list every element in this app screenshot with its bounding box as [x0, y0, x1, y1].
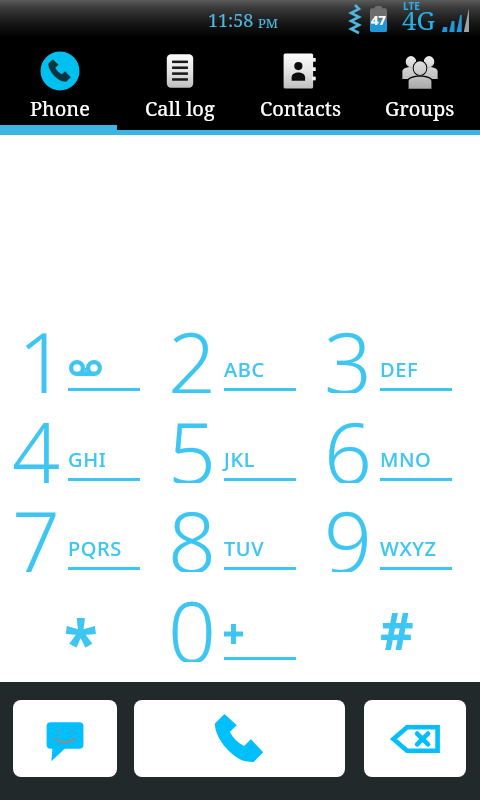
staticText: 5 — [168, 394, 216, 483]
button[interactable]: 7 — [12, 499, 168, 588]
button[interactable]: 8 — [168, 499, 324, 588]
button[interactable]: 4 — [12, 410, 168, 499]
staticText: 7 — [12, 483, 60, 572]
staticText: 47 — [371, 11, 386, 29]
staticText: 4 — [12, 394, 60, 483]
staticText: 11:58 — [208, 8, 254, 33]
button[interactable]: * — [12, 589, 168, 678]
staticText: ABC — [224, 356, 265, 383]
staticText: 2 — [168, 304, 216, 393]
staticText: TUV — [224, 535, 265, 562]
staticText: WXYZ — [380, 535, 437, 562]
button[interactable]: 3 — [324, 320, 480, 409]
staticText: JKL — [224, 446, 255, 473]
button[interactable]: 6 — [324, 410, 480, 499]
staticText: Phone — [30, 95, 90, 122]
button[interactable]: Delete — [364, 700, 466, 777]
button[interactable]: 1 — [12, 320, 168, 409]
staticText: 0 — [168, 573, 216, 662]
staticText: Groups — [385, 95, 455, 122]
staticText: 8 — [168, 483, 216, 572]
staticText: PM — [258, 14, 279, 32]
button[interactable]: # — [324, 589, 480, 678]
staticText: Contacts — [260, 95, 341, 122]
staticText: 6 — [324, 394, 372, 483]
staticText: MNO — [380, 446, 432, 473]
staticText: 1 — [18, 304, 66, 393]
button[interactable]: Call — [134, 700, 345, 777]
button[interactable]: 9 — [324, 499, 480, 588]
staticText: 3 — [324, 304, 372, 393]
staticText: * — [64, 600, 98, 684]
staticText: PQRS — [68, 535, 122, 562]
staticText: DEF — [380, 356, 419, 383]
staticText: 9 — [324, 483, 372, 572]
button[interactable]: Contacts — [240, 36, 360, 130]
button[interactable]: Groups — [360, 36, 480, 130]
button[interactable]: 2 — [168, 320, 324, 409]
button[interactable]: 0 — [168, 589, 324, 678]
staticText: LTE — [403, 0, 420, 13]
staticText: Call log — [145, 95, 215, 122]
button[interactable]: Phone — [0, 36, 120, 130]
staticText: GHI — [68, 446, 107, 473]
staticText: 4G — [402, 2, 436, 34]
button[interactable]: Call log — [120, 36, 240, 130]
staticText: # — [380, 594, 414, 665]
button[interactable]: 5 — [168, 410, 324, 499]
button[interactable]: Send message — [13, 700, 117, 777]
